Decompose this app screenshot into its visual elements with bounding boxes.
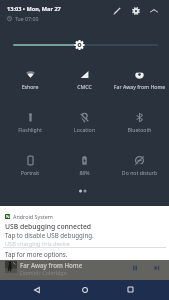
staticText: Tap for more options. <box>5 250 68 258</box>
button[interactable]: Home <box>75 280 94 299</box>
button[interactable]: Eshore <box>3 60 57 103</box>
staticText: USB charging this device <box>5 240 70 248</box>
staticText: 88% <box>57 169 112 176</box>
staticText: Portrait <box>3 169 57 176</box>
button[interactable]: 88% <box>57 146 112 189</box>
button[interactable]: Location <box>57 103 112 146</box>
button[interactable]: Back <box>27 280 46 299</box>
staticText: Far Away from Home <box>112 83 167 90</box>
staticText: 13:03 • Mon, Mar 27 <box>7 5 61 13</box>
button[interactable]: Collapse <box>145 2 163 20</box>
staticText: Tap to disable USB debugging. <box>5 231 94 239</box>
button[interactable]: CMCC <box>57 60 112 103</box>
staticText: Eshore <box>3 83 57 90</box>
button[interactable]: Settings <box>127 2 145 20</box>
button[interactable]: Next track <box>149 260 165 276</box>
button[interactable]: Pause <box>127 260 143 276</box>
staticText: Dominic Coleridge <box>20 269 67 276</box>
staticText: CMCC <box>57 83 112 90</box>
staticText: Bluetooth <box>112 126 167 133</box>
staticText: Tue 07:00 <box>15 15 39 22</box>
button[interactable]: Flashlight <box>3 103 57 146</box>
button[interactable]: Edit quick settings <box>108 2 126 20</box>
button[interactable]: Brightness <box>0 36 169 54</box>
button[interactable]: Bluetooth <box>112 103 167 146</box>
button[interactable]: Far Away from Home <box>0 260 169 281</box>
staticText: Far Away from Home <box>20 261 83 269</box>
staticText: Android System <box>13 213 53 220</box>
button[interactable]: Recent apps <box>121 280 140 299</box>
staticText: Do not disturb <box>112 169 167 176</box>
button[interactable]: Do not disturb <box>112 146 167 189</box>
button[interactable]: Far Away from Home <box>112 60 167 103</box>
staticText: USB debugging connected <box>5 222 92 231</box>
button[interactable]: Portrait <box>3 146 57 189</box>
button[interactable]: Android System <box>0 206 169 260</box>
staticText: Location <box>57 126 112 133</box>
staticText: Flashlight <box>3 126 57 133</box>
